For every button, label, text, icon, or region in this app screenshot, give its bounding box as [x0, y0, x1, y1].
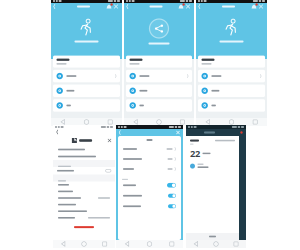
button[interactable]	[53, 208, 115, 214]
button[interactable]: Back	[196, 118, 220, 126]
staticText: 22	[190, 147, 200, 160]
button[interactable]: Recent apps	[226, 240, 246, 248]
button[interactable]	[53, 195, 115, 201]
button[interactable]: Home	[220, 118, 243, 126]
button[interactable]	[118, 180, 181, 190]
button[interactable]: Back	[53, 3, 61, 10]
button[interactable]	[53, 214, 115, 221]
button[interactable]: Recent apps	[161, 240, 183, 248]
button[interactable]: Notifications	[105, 3, 112, 10]
button[interactable]: Back	[56, 129, 62, 135]
button[interactable]: Home	[138, 240, 161, 248]
button[interactable]	[53, 167, 115, 174]
button[interactable]: Notifications	[177, 3, 184, 10]
button[interactable]: Home	[75, 118, 98, 126]
button[interactable]: Recent apps	[94, 240, 115, 248]
button[interactable]: Back	[119, 129, 125, 135]
button[interactable]: Close	[107, 138, 111, 142]
button[interactable]	[53, 84, 120, 97]
button[interactable]	[118, 154, 181, 164]
button[interactable]	[53, 188, 115, 195]
button[interactable]: Record	[239, 130, 244, 135]
button[interactable]: Back	[53, 240, 74, 248]
button[interactable]	[53, 70, 120, 82]
button[interactable]: Recent apps	[243, 118, 267, 126]
button[interactable]: Home	[147, 118, 171, 126]
button[interactable]	[126, 70, 192, 82]
button[interactable]: Recent apps	[98, 118, 122, 126]
button[interactable]	[118, 164, 181, 174]
button[interactable]	[53, 181, 115, 188]
button[interactable]: Back	[124, 118, 147, 126]
button[interactable]	[186, 233, 239, 240]
button[interactable]	[126, 99, 192, 112]
button[interactable]	[53, 201, 115, 208]
button[interactable]	[118, 190, 181, 201]
button[interactable]	[126, 84, 192, 97]
button[interactable]	[53, 153, 115, 160]
button[interactable]: Home	[206, 240, 226, 248]
button[interactable]: Recent apps	[171, 118, 194, 126]
button[interactable]: Close	[112, 3, 119, 10]
button[interactable]: Back	[186, 240, 206, 248]
button[interactable]	[198, 84, 265, 97]
button[interactable]: Close	[176, 130, 180, 134]
button[interactable]: Back	[198, 3, 206, 10]
button[interactable]: Close	[184, 3, 191, 10]
button[interactable]	[53, 99, 120, 112]
button[interactable]: Close	[257, 3, 264, 10]
button[interactable]: Back	[126, 3, 134, 10]
button[interactable]	[53, 224, 115, 230]
button[interactable]	[198, 99, 265, 112]
button[interactable]	[198, 70, 265, 82]
button[interactable]	[118, 144, 181, 154]
button[interactable]	[53, 146, 115, 153]
button[interactable]: Notifications	[250, 3, 257, 10]
button[interactable]	[118, 201, 181, 211]
button[interactable]: Back	[116, 240, 138, 248]
button[interactable]: Back	[51, 118, 75, 126]
button[interactable]: Home	[74, 240, 94, 248]
